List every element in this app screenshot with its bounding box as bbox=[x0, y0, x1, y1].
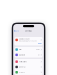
button[interactable]: Back bbox=[13, 29, 20, 32]
staticText: Privacy bbox=[19, 71, 25, 73]
staticText: General bbox=[19, 66, 25, 68]
staticText: Sign In bbox=[38, 43, 42, 44]
button[interactable]: Notifications bbox=[14, 59, 43, 64]
staticText: Bluetooth bbox=[19, 54, 25, 56]
button[interactable]: Apple Account bbox=[14, 37, 43, 45]
staticText: Wi-Fi bbox=[19, 49, 21, 50]
staticText: iCloud, Media & Purchases bbox=[19, 40, 37, 42]
staticText: Notifications bbox=[19, 61, 27, 63]
button[interactable]: Wi-Fi bbox=[14, 47, 43, 52]
staticText: On bbox=[38, 54, 40, 56]
button[interactable]: Privacy bbox=[14, 70, 43, 75]
button[interactable]: Bluetooth bbox=[14, 52, 43, 57]
staticText: Settings bbox=[25, 30, 32, 32]
staticText: Apple Account bbox=[19, 38, 29, 40]
button[interactable]: General bbox=[14, 64, 43, 70]
staticText: Home bbox=[36, 49, 40, 50]
staticText: Back bbox=[15, 30, 19, 32]
